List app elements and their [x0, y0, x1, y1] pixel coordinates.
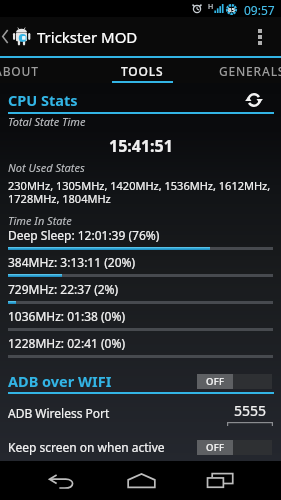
button[interactable]: More options: [242, 17, 278, 56]
staticText: 384MHz: 3:13:11 (20%): [8, 254, 136, 270]
staticText: 729MHz: 22:37 (2%): [8, 281, 119, 297]
button[interactable]: Recent apps: [196, 461, 244, 500]
staticText: Total State Time: [8, 114, 86, 128]
button[interactable]: 1036MHz: 01:38 (0%): [0, 307, 281, 334]
staticText: 230MHz, 1305MHz, 1420MHz, 1536MHz, 1612M…: [8, 178, 277, 206]
staticText: OFF: [206, 375, 225, 388]
staticText: Time In State: [8, 213, 72, 227]
button[interactable]: Home: [117, 461, 165, 500]
button[interactable]: 1228MHz: 02:41 (0%): [0, 334, 281, 361]
staticText: TOOLS: [121, 63, 164, 79]
button[interactable]: ABOUT: [0, 58, 78, 83]
button[interactable]: Keep screen on when active: [0, 431, 281, 463]
button[interactable]: TOOLS: [80, 58, 204, 83]
staticText: GENERALS: [219, 63, 281, 79]
staticText: 09:57: [244, 2, 275, 18]
staticText: ADB over WIFI: [8, 371, 112, 391]
button[interactable]: Refresh: [242, 88, 266, 112]
staticText: Not Used States: [8, 160, 85, 174]
button[interactable]: Toggle, off: [197, 440, 272, 455]
button[interactable]: Navigate up: [0, 25, 33, 48]
button[interactable]: 384MHz: 3:13:11 (20%): [0, 253, 281, 280]
staticText: ADB Wireless Port: [8, 405, 110, 421]
button[interactable]: ADB Wireless Port: [0, 397, 281, 429]
staticText: 5555: [234, 401, 267, 420]
button[interactable]: Back: [37, 461, 85, 500]
staticText: CPU Stats: [8, 90, 78, 110]
button[interactable]: 729MHz: 22:37 (2%): [0, 280, 281, 307]
staticText: H: [208, 2, 214, 12]
staticText: ABOUT: [0, 63, 39, 79]
button[interactable]: Toggle, off: [197, 374, 272, 389]
staticText: OFF: [206, 441, 225, 454]
staticText: Deep Sleep: 12:01:39 (76%): [8, 227, 160, 243]
button[interactable]: Deep Sleep: 12:01:39 (76%): [0, 226, 281, 253]
staticText: Trickster MOD: [37, 27, 138, 47]
staticText: 15:41:51: [109, 135, 173, 155]
button[interactable]: GENERALS: [190, 58, 281, 83]
staticText: 85: [228, 6, 235, 14]
staticText: 1228MHz: 02:41 (0%): [8, 335, 126, 351]
staticText: 1036MHz: 01:38 (0%): [8, 308, 126, 324]
staticText: Keep screen on when active: [8, 439, 165, 455]
